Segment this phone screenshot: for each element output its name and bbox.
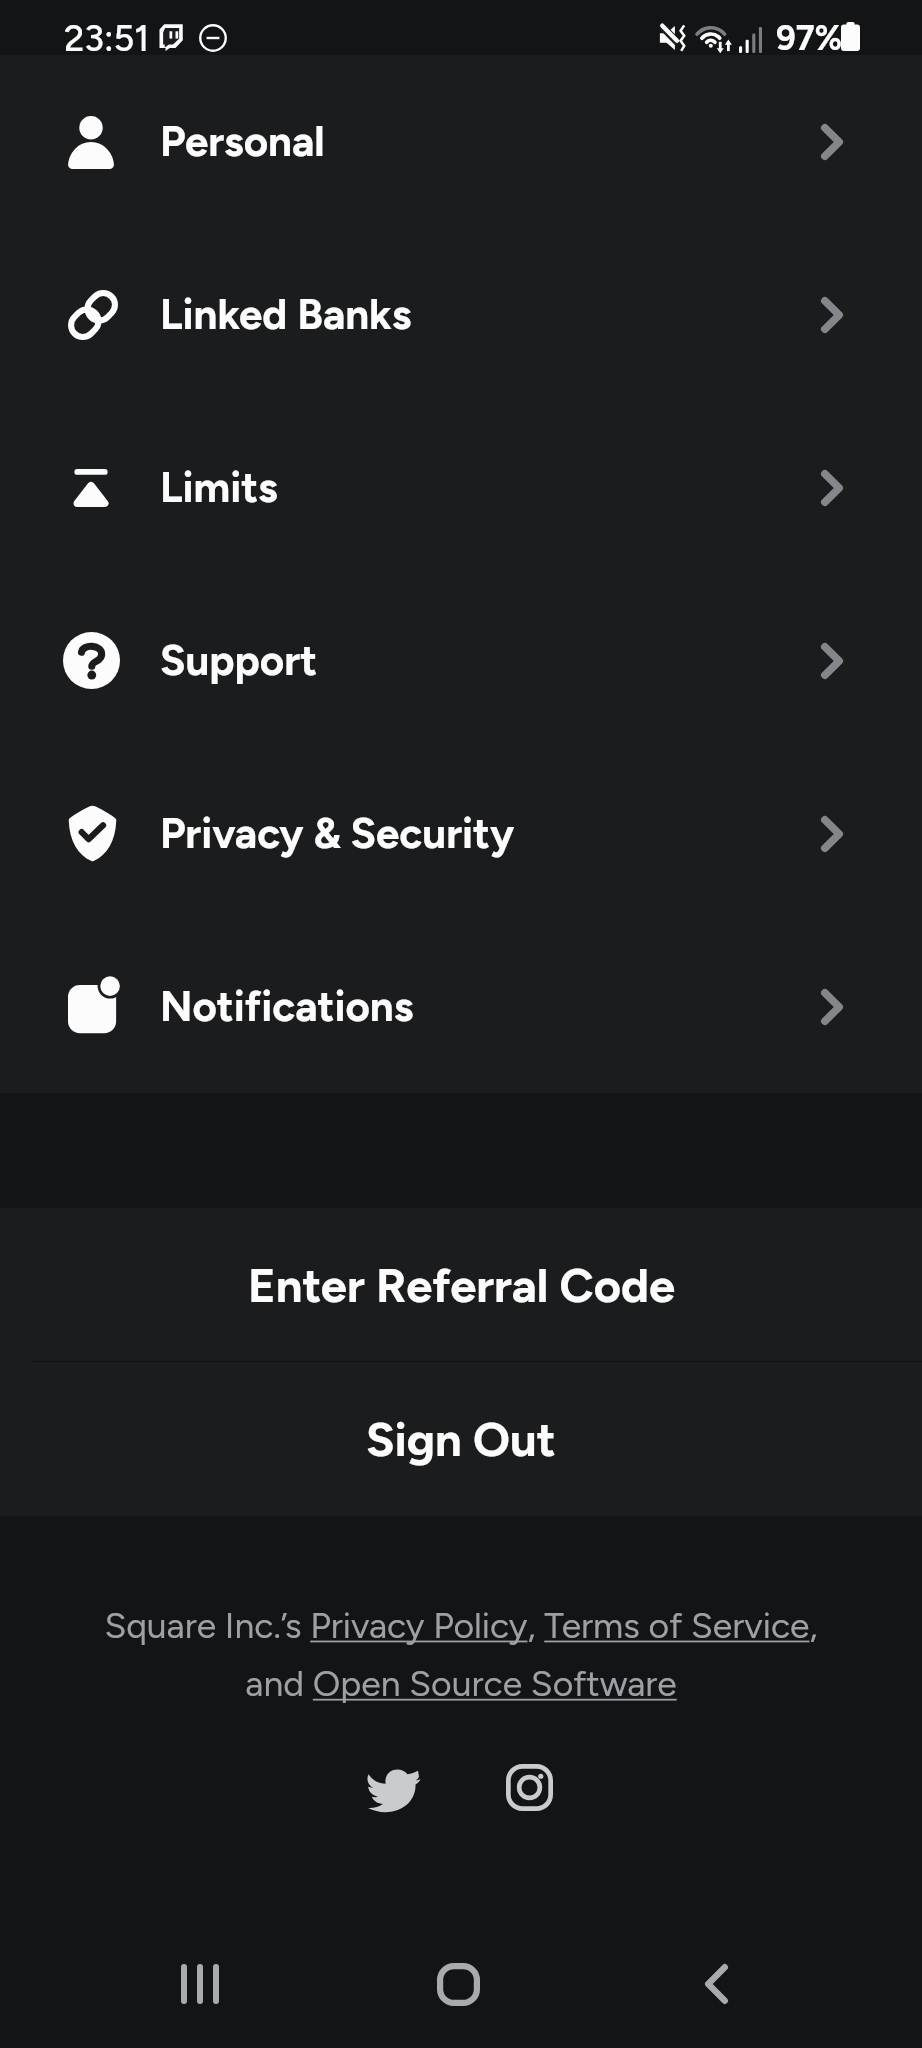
- button[interactable]: Limits: [0, 401, 922, 574]
- button[interactable]: Privacy & Security: [0, 747, 922, 920]
- staticText: Privacy & Security: [160, 808, 515, 858]
- staticText: Linked Banks: [160, 289, 412, 339]
- staticText: Notifications: [160, 981, 414, 1031]
- staticText: Square Inc.’s Privacy Policy, Terms of S…: [88, 1604, 834, 1705]
- staticText: Enter Referral Code: [248, 1257, 675, 1313]
- button[interactable]: Back: [651, 1920, 781, 2048]
- staticText: 97%: [776, 18, 843, 59]
- button[interactable]: Enter Referral Code: [0, 1208, 922, 1361]
- staticText: Support: [160, 635, 318, 685]
- button[interactable]: Linked Banks: [0, 228, 922, 401]
- button[interactable]: Personal: [0, 55, 922, 228]
- staticText: Limits: [160, 462, 278, 512]
- button[interactable]: Home: [393, 1920, 523, 2048]
- staticText: Sign Out: [366, 1411, 556, 1467]
- staticText: Personal: [160, 116, 325, 166]
- button[interactable]: Sign Out: [0, 1362, 922, 1516]
- button[interactable]: Recent apps: [135, 1920, 265, 2048]
- staticText: 23:51: [64, 17, 150, 60]
- button[interactable]: Support: [0, 574, 922, 747]
- button[interactable]: Notifications: [0, 920, 922, 1093]
- button[interactable]: Twitter: [338, 1739, 448, 1835]
- button[interactable]: Instagram: [474, 1739, 584, 1835]
